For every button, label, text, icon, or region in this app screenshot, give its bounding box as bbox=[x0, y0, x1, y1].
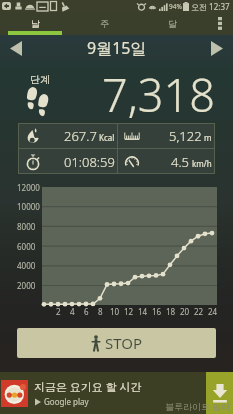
staticText: 2000 bbox=[17, 280, 36, 291]
staticText: 8000 bbox=[17, 221, 36, 232]
staticText: 4 bbox=[70, 306, 75, 317]
staticText: 12 bbox=[124, 306, 134, 317]
button[interactable]: 달 bbox=[138, 12, 206, 35]
staticText: 24 bbox=[208, 306, 218, 317]
staticText: Google play bbox=[44, 396, 89, 407]
button[interactable]: Download bbox=[206, 372, 233, 414]
button[interactable]: 주 bbox=[70, 12, 138, 35]
staticText: 6 bbox=[84, 306, 89, 317]
staticText: 20 bbox=[180, 306, 190, 317]
staticText: STOP bbox=[105, 333, 143, 353]
staticText: 6000 bbox=[17, 241, 36, 252]
staticText: 8 bbox=[98, 306, 103, 317]
staticText: 22 bbox=[194, 306, 204, 317]
staticText: 달 bbox=[168, 18, 177, 29]
staticText: 블루라이트 필터 bbox=[165, 400, 231, 412]
staticText: 01:08:59 bbox=[64, 153, 115, 171]
staticText: 12000 bbox=[17, 182, 40, 193]
staticText: 10000 bbox=[17, 201, 40, 212]
staticText: 94% bbox=[169, 2, 182, 11]
staticText: 오전 12:37 bbox=[191, 1, 230, 12]
staticText: 단계 bbox=[30, 73, 50, 86]
staticText: km/h bbox=[192, 158, 212, 169]
button[interactable]: More options bbox=[206, 12, 233, 35]
staticText: m bbox=[204, 132, 212, 143]
staticText: Kcal bbox=[99, 132, 115, 143]
staticText: 지금은 요기요 할 시간 bbox=[34, 379, 142, 394]
staticText: 10 bbox=[110, 306, 120, 317]
staticText: 267.7 bbox=[64, 127, 97, 145]
staticText: 18 bbox=[166, 306, 176, 317]
button[interactable]: Next day bbox=[207, 38, 227, 58]
staticText: 7,318 bbox=[102, 64, 215, 125]
staticText: 2 bbox=[56, 306, 61, 317]
staticText: 14 bbox=[138, 306, 148, 317]
staticText: 5,122 bbox=[169, 127, 202, 145]
staticText: 4.5 bbox=[171, 153, 190, 171]
button[interactable]: STOP bbox=[17, 328, 216, 358]
staticText: 날 bbox=[31, 18, 40, 29]
staticText: 16 bbox=[152, 306, 162, 317]
button[interactable]: 날 bbox=[0, 12, 70, 35]
staticText: 주 bbox=[100, 18, 109, 29]
button[interactable]: Previous day bbox=[6, 38, 26, 58]
staticText: 9월15일 bbox=[87, 37, 147, 59]
staticText: 4000 bbox=[17, 260, 36, 271]
